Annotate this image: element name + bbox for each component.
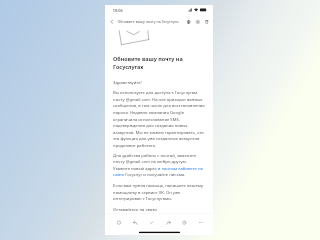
staticText: Вы используете для доступа к Госуслугам … [113, 89, 205, 148]
button[interactable]: Mark unread [114, 217, 124, 228]
staticText: Обновите вашу почту на Госуслуги [118, 19, 184, 24]
button[interactable]: Settings [193, 17, 202, 26]
button[interactable]: Back [107, 17, 116, 26]
staticText: 10:06 [113, 7, 123, 13]
staticText: Обновите вашу почту на Госуслугах [113, 54, 183, 70]
button[interactable]: More options [196, 217, 206, 228]
staticText: Оставайтесь на связи [113, 206, 157, 212]
staticText: Если вам нужна помощь, напишите нашему п… [113, 182, 205, 202]
staticText: Для удобства работы с почтой, замените п… [113, 151, 205, 178]
button[interactable]: Delete [202, 17, 211, 26]
staticText: Здравствуйте! [113, 79, 142, 85]
button[interactable]: Print [184, 17, 193, 26]
button[interactable]: Reply [130, 217, 140, 228]
button[interactable]: Forward [163, 217, 173, 228]
button[interactable]: Archive [146, 217, 157, 228]
button[interactable]: Snooze [179, 217, 189, 228]
